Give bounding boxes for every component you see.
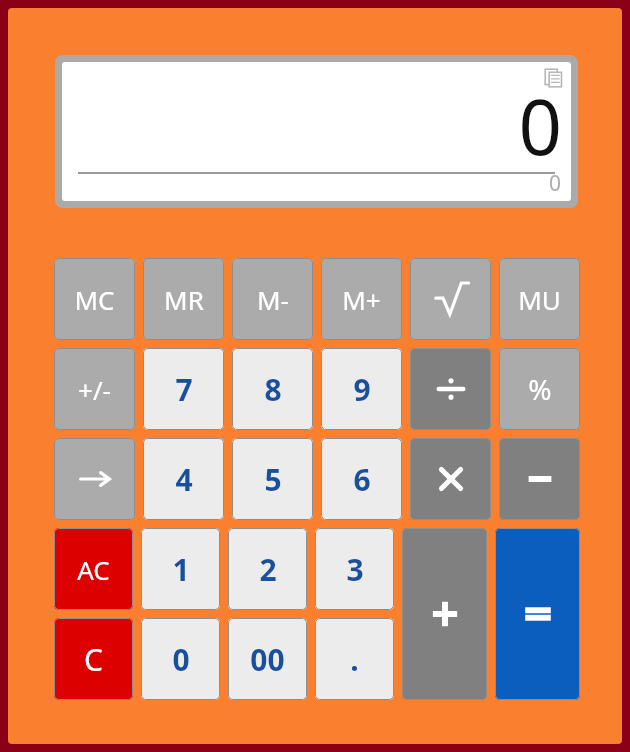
button[interactable]: +/- bbox=[54, 348, 135, 430]
button[interactable]: . bbox=[315, 618, 394, 700]
button[interactable]: 0 bbox=[141, 618, 220, 700]
button[interactable]: Divide bbox=[410, 348, 491, 430]
staticText: 8 bbox=[264, 369, 282, 410]
button[interactable]: Backspace bbox=[54, 438, 135, 520]
staticText: 1 bbox=[172, 549, 190, 590]
button[interactable]: MU bbox=[499, 258, 580, 340]
staticText: MC bbox=[74, 282, 115, 317]
staticText: +/- bbox=[78, 372, 111, 407]
button[interactable]: 6 bbox=[321, 438, 402, 520]
button[interactable]: Equals bbox=[495, 528, 580, 700]
staticText: 2 bbox=[259, 549, 277, 590]
button[interactable]: Plus bbox=[402, 528, 487, 700]
button[interactable]: 2 bbox=[228, 528, 307, 610]
button[interactable]: 3 bbox=[315, 528, 394, 610]
button[interactable]: 7 bbox=[143, 348, 224, 430]
button[interactable]: 4 bbox=[143, 438, 224, 520]
staticText: AC bbox=[77, 552, 110, 587]
button[interactable]: AC bbox=[54, 528, 133, 610]
button[interactable]: C bbox=[54, 618, 133, 700]
staticText: 4 bbox=[175, 459, 193, 500]
staticText: 0 bbox=[549, 169, 562, 198]
button[interactable]: M- bbox=[232, 258, 313, 340]
staticText: 5 bbox=[264, 459, 282, 500]
button[interactable]: % bbox=[499, 348, 580, 430]
button[interactable]: MC bbox=[54, 258, 135, 340]
staticText: M+ bbox=[342, 282, 381, 317]
button[interactable]: 00 bbox=[228, 618, 307, 700]
staticText: MR bbox=[164, 282, 204, 317]
staticText: 9 bbox=[353, 369, 371, 410]
staticText: 6 bbox=[353, 459, 371, 500]
button[interactable]: Copy bbox=[543, 67, 565, 89]
button[interactable]: 5 bbox=[232, 438, 313, 520]
staticText: 0 bbox=[518, 74, 562, 178]
button[interactable]: Square root bbox=[410, 258, 491, 340]
staticText: M- bbox=[257, 282, 289, 317]
button[interactable]: 8 bbox=[232, 348, 313, 430]
button[interactable]: Multiply bbox=[410, 438, 491, 520]
staticText: 7 bbox=[175, 369, 193, 410]
button[interactable]: MR bbox=[143, 258, 224, 340]
staticText: MU bbox=[518, 282, 561, 317]
staticText: 3 bbox=[346, 549, 364, 590]
staticText: % bbox=[528, 370, 552, 408]
button[interactable]: Minus bbox=[499, 438, 580, 520]
button[interactable]: 9 bbox=[321, 348, 402, 430]
staticText: . bbox=[350, 639, 359, 680]
staticText: C bbox=[84, 639, 103, 680]
button[interactable]: 1 bbox=[141, 528, 220, 610]
button[interactable]: M+ bbox=[321, 258, 402, 340]
staticText: 00 bbox=[250, 639, 285, 680]
staticText: 0 bbox=[172, 639, 190, 680]
